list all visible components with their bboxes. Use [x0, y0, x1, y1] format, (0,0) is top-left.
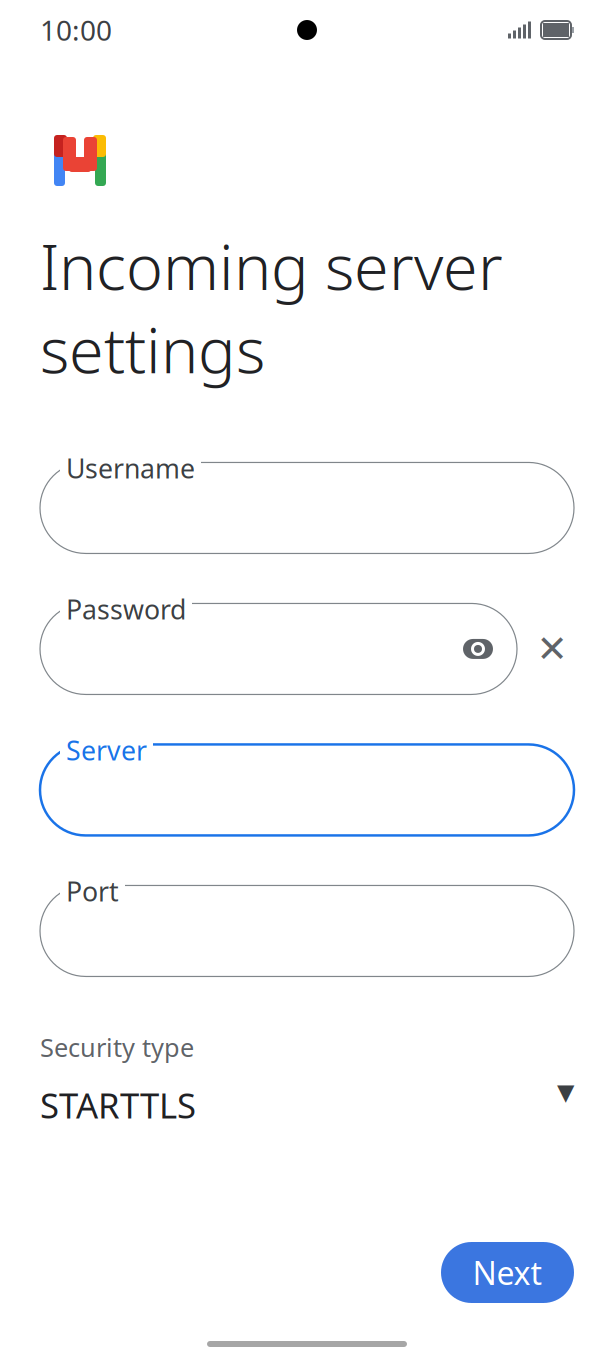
staticText: Security type	[40, 1030, 194, 1064]
staticText: ✕	[536, 628, 567, 670]
staticText: Password	[66, 591, 186, 627]
staticText: Port	[66, 873, 119, 909]
button[interactable]: Security type	[0, 1030, 614, 1128]
staticText: ▼	[557, 1079, 574, 1105]
staticText: Server	[66, 732, 147, 768]
staticText: Next	[472, 1251, 542, 1294]
button[interactable]: Password	[40, 603, 517, 694]
button[interactable]: Username	[40, 462, 574, 553]
button[interactable]: Port	[40, 885, 574, 976]
button[interactable]: Server	[40, 744, 574, 835]
button[interactable]: Clear password	[529, 626, 575, 672]
staticText: settings	[40, 307, 265, 390]
staticText: STARTTLS	[40, 1082, 196, 1128]
button[interactable]: Next	[441, 1242, 574, 1303]
staticText: 10:00	[40, 11, 112, 49]
staticText: Incoming server	[40, 224, 503, 307]
staticText: Username	[66, 450, 195, 486]
